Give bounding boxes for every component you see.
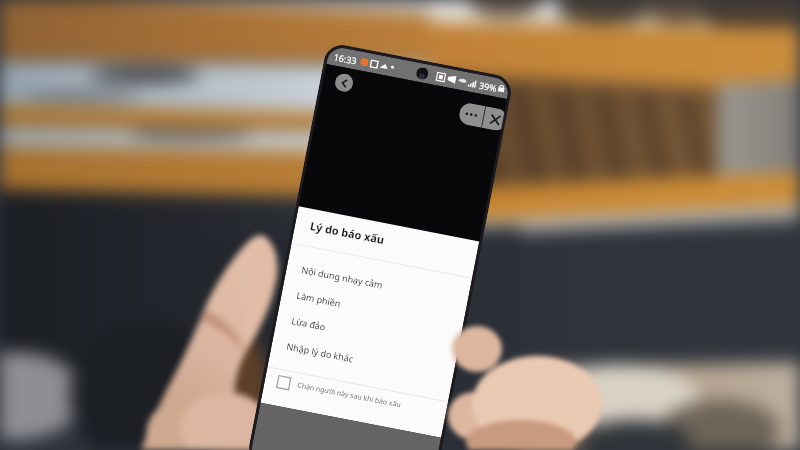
button[interactable]: Lừa đảo bbox=[275, 304, 460, 365]
button[interactable]: Nội dung nhạy cảm bbox=[284, 253, 470, 314]
staticText: 39% bbox=[478, 79, 498, 94]
button[interactable]: Close bbox=[482, 106, 505, 131]
staticText: Nội dung nhạy cảm bbox=[301, 263, 384, 291]
button[interactable]: Back bbox=[333, 72, 355, 93]
staticText: Lừa đảo bbox=[291, 314, 327, 333]
staticText: Lý do báo xấu bbox=[309, 218, 386, 247]
button[interactable]: Làm phiền bbox=[280, 279, 465, 339]
staticText: Chặn người này sau khi báo xấu bbox=[296, 380, 402, 410]
staticText: 16:33 bbox=[333, 50, 359, 67]
button[interactable]: Nhập lý do khác bbox=[270, 330, 455, 391]
staticText: Nhập lý do khác bbox=[286, 340, 355, 364]
button[interactable]: More options bbox=[457, 101, 485, 128]
button[interactable]: Chặn người này sau khi báo xấu bbox=[263, 367, 448, 425]
staticText: Làm phiền bbox=[296, 289, 342, 309]
